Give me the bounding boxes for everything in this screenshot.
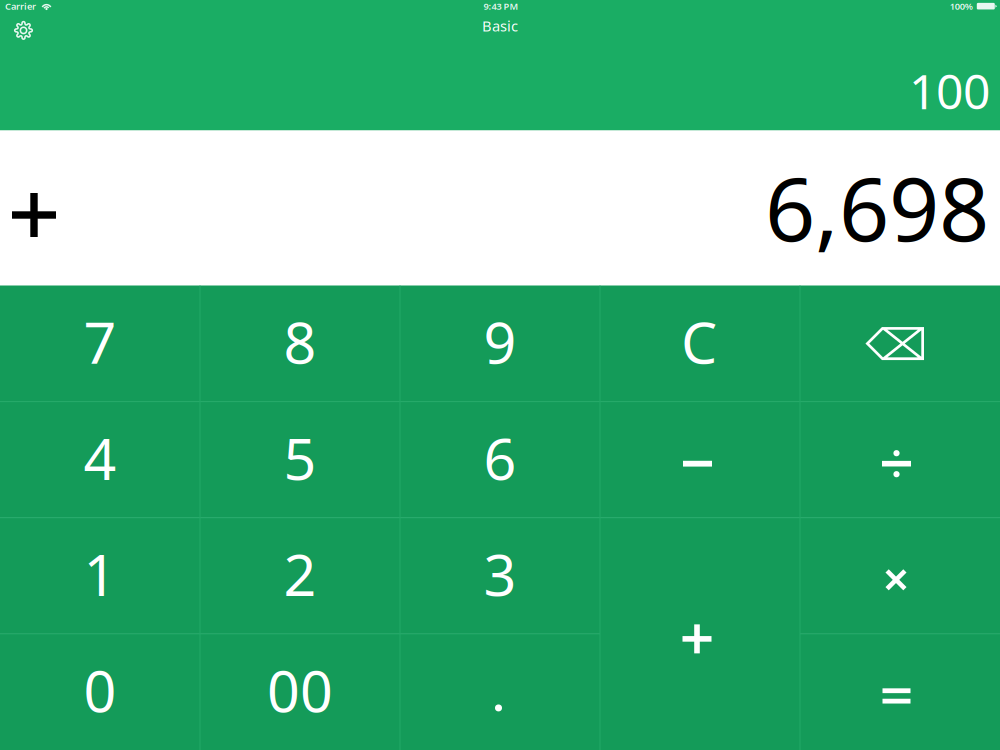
staticText: 8	[283, 303, 316, 380]
staticText: 0	[83, 652, 116, 728]
staticText: 5	[283, 420, 316, 496]
staticText: 6	[483, 420, 516, 496]
button[interactable]: Multiply	[800, 518, 1000, 634]
button[interactable]: 5	[200, 402, 400, 518]
staticText: 1	[83, 536, 116, 612]
button[interactable]: Settings	[0, 12, 47, 39]
staticText: 9	[483, 303, 516, 380]
button[interactable]: Decimal point	[400, 634, 600, 750]
button[interactable]: 3	[400, 518, 600, 634]
staticText: C	[681, 303, 717, 380]
staticText: 00	[267, 652, 333, 728]
button[interactable]: 2	[200, 518, 400, 634]
staticText: Basic	[482, 16, 518, 36]
staticText: 100%	[950, 0, 973, 12]
button[interactable]: 8	[200, 285, 400, 402]
button[interactable]: Backspace	[800, 285, 1000, 402]
staticText: 4	[83, 420, 116, 496]
button[interactable]: Minus	[600, 402, 800, 518]
staticText: 3	[483, 536, 516, 612]
button[interactable]: Equals	[800, 634, 1000, 750]
staticText: 100	[909, 59, 990, 122]
button[interactable]: Clear	[600, 285, 800, 402]
staticText: 2	[283, 536, 316, 612]
button[interactable]: Plus	[600, 518, 800, 750]
button[interactable]: 00	[200, 634, 400, 750]
staticText: 6,698	[765, 149, 989, 265]
staticText: Carrier	[5, 0, 36, 12]
staticText: 7	[83, 303, 116, 380]
button[interactable]: Divide	[800, 402, 1000, 518]
button[interactable]: 4	[0, 402, 200, 518]
button[interactable]: 7	[0, 285, 200, 402]
button[interactable]: 9	[400, 285, 600, 402]
button[interactable]: 6	[400, 402, 600, 518]
button[interactable]: 1	[0, 518, 200, 634]
staticText: 9:43 PM	[483, 0, 518, 12]
button[interactable]: 0	[0, 634, 200, 750]
